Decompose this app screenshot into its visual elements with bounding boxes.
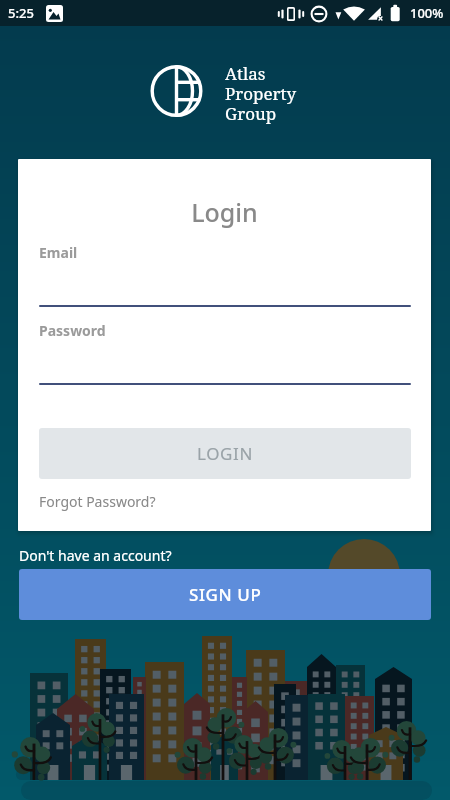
staticText: Group — [225, 102, 277, 125]
staticText: Property — [225, 82, 297, 105]
staticText: Login — [18, 195, 431, 229]
button[interactable]: LOGIN — [39, 428, 411, 479]
staticText: 5:25 — [8, 4, 34, 22]
staticText: 100% — [410, 4, 444, 22]
staticText: Password — [39, 321, 106, 340]
staticText: Don't have an account? — [19, 546, 172, 565]
staticText: Email — [39, 243, 78, 262]
staticText: SIGN UP — [189, 583, 262, 606]
button[interactable]: SIGN UP — [19, 569, 431, 620]
button[interactable]: Forgot Password? — [39, 492, 156, 511]
staticText: Atlas — [225, 62, 266, 85]
staticText: LOGIN — [197, 442, 253, 465]
